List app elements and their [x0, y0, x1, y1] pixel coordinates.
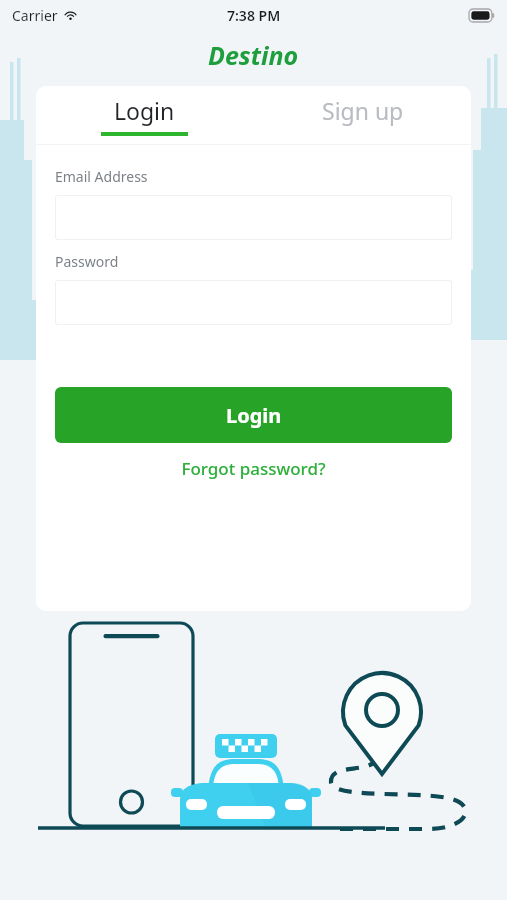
staticText: 7:38 PM — [227, 6, 281, 25]
button[interactable]: Forgot password? — [55, 457, 452, 480]
staticText: Forgot password? — [181, 457, 326, 480]
staticText: Sign up — [322, 95, 404, 126]
button[interactable] — [55, 280, 452, 325]
button[interactable] — [55, 195, 452, 240]
staticText: Login — [226, 402, 282, 429]
button[interactable]: Login — [36, 86, 253, 144]
staticText: Email Address — [55, 167, 148, 186]
staticText: Carrier — [12, 6, 58, 25]
staticText: Destino — [208, 38, 299, 72]
staticText: Login — [114, 95, 175, 126]
button[interactable]: Login — [55, 387, 452, 443]
staticText: Password — [55, 252, 119, 271]
button[interactable]: Sign up — [253, 86, 471, 144]
